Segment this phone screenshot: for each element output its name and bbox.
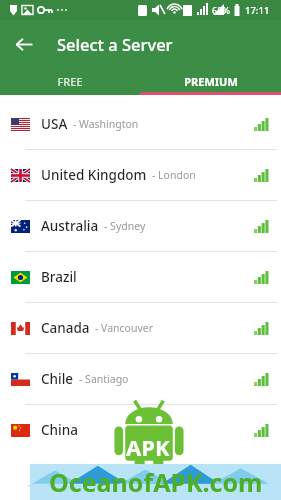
button[interactable]: FREE <box>0 67 140 95</box>
staticText: - Sydney <box>104 219 146 233</box>
button[interactable]: United Kingdom <box>0 150 281 200</box>
staticText: - Washington <box>73 117 139 131</box>
staticText: United Kingdom <box>41 166 147 184</box>
staticText: PREMIUM <box>184 74 238 89</box>
button[interactable]: USA <box>0 99 281 149</box>
staticText: China <box>41 421 78 439</box>
button[interactable]: Back <box>8 28 40 60</box>
button[interactable]: Canada <box>0 303 281 353</box>
staticText: Select a Server <box>57 33 173 55</box>
staticText: USA <box>41 115 68 133</box>
button[interactable]: China <box>0 405 281 455</box>
staticText: 17:11 <box>245 4 270 17</box>
staticText: APK <box>126 432 170 462</box>
staticText: - London <box>152 168 196 182</box>
staticText: FREE <box>57 74 83 89</box>
staticText: - Santiago <box>79 372 129 386</box>
button[interactable]: Brazil <box>0 252 281 302</box>
staticText: Canada <box>41 319 90 337</box>
button[interactable]: Australia <box>0 201 281 251</box>
staticText: 65% <box>212 4 230 16</box>
staticText: OceanofAPK.com <box>49 465 263 499</box>
staticText: - Vancouver <box>95 321 154 335</box>
staticText: Australia <box>41 217 99 235</box>
button[interactable]: Chile <box>0 354 281 404</box>
button[interactable]: PREMIUM <box>140 67 281 95</box>
staticText: Brazil <box>41 268 77 286</box>
staticText: Chile <box>41 370 74 388</box>
